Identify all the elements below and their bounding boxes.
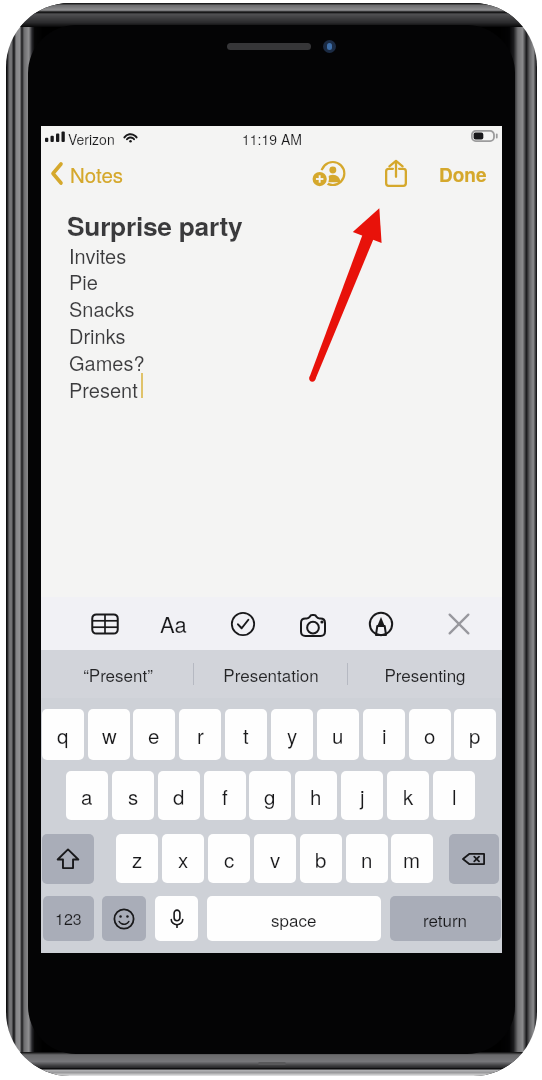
- staticText: w: [102, 720, 117, 749]
- button[interactable]: q: [42, 709, 84, 760]
- staticText: v: [270, 844, 281, 873]
- staticText: f: [222, 781, 228, 810]
- button[interactable]: h: [295, 771, 337, 820]
- button[interactable]: Notes: [41, 158, 134, 199]
- staticText: Aa: [160, 608, 187, 640]
- staticText: Surprise party: [67, 206, 243, 244]
- staticText: z: [132, 844, 143, 873]
- staticText: s: [128, 781, 139, 810]
- staticText: e: [148, 720, 160, 749]
- staticText: t: [243, 720, 249, 749]
- staticText: Presentation: [223, 662, 319, 686]
- button[interactable]: “Present”: [41, 650, 194, 698]
- staticText: o: [424, 720, 436, 749]
- staticText: Present: [69, 375, 138, 404]
- staticText: return: [423, 907, 468, 931]
- staticText: Presenting: [384, 662, 466, 686]
- button[interactable]: z: [116, 834, 158, 883]
- staticText: “Present”: [83, 662, 153, 686]
- staticText: l: [452, 781, 457, 810]
- button[interactable]: Aa: [150, 603, 196, 644]
- button[interactable]: m: [391, 834, 433, 883]
- button[interactable]: Share: [376, 159, 416, 198]
- staticText: u: [332, 720, 344, 749]
- staticText: 11:19 AM: [242, 129, 302, 149]
- staticText: Verizon: [68, 129, 115, 149]
- button[interactable]: Done: [433, 158, 502, 199]
- button[interactable]: b: [300, 834, 342, 883]
- button[interactable]: Insert table: [82, 603, 128, 644]
- staticText: Invites: [69, 241, 127, 270]
- button[interactable]: Markup: [358, 603, 404, 644]
- staticText: q: [57, 720, 69, 749]
- staticText: d: [173, 781, 185, 810]
- staticText: i: [382, 720, 387, 749]
- button[interactable]: return: [390, 896, 501, 941]
- button[interactable]: n: [346, 834, 388, 883]
- staticText: x: [178, 844, 189, 873]
- staticText: g: [264, 781, 276, 810]
- button[interactable]: s: [112, 771, 154, 820]
- staticText: h: [310, 781, 322, 810]
- button[interactable]: y: [271, 709, 313, 760]
- button[interactable]: space: [207, 896, 381, 941]
- button[interactable]: Camera: [290, 603, 336, 644]
- staticText: k: [403, 781, 414, 810]
- button[interactable]: j: [341, 771, 383, 820]
- button[interactable]: v: [254, 834, 296, 883]
- staticText: Games?: [69, 348, 145, 377]
- button[interactable]: c: [208, 834, 250, 883]
- button[interactable]: Checklist: [220, 603, 266, 644]
- button[interactable]: f: [204, 771, 246, 820]
- button[interactable]: o: [409, 709, 451, 760]
- staticText: c: [224, 844, 235, 873]
- staticText: y: [287, 720, 298, 749]
- button[interactable]: Presentation: [194, 650, 348, 698]
- button[interactable]: Dictate: [155, 896, 198, 941]
- button[interactable]: x: [162, 834, 204, 883]
- button[interactable]: u: [317, 709, 359, 760]
- button[interactable]: l: [433, 771, 475, 820]
- button[interactable]: 123: [43, 896, 94, 941]
- staticText: m: [403, 844, 421, 873]
- button[interactable]: Close keyboard: [436, 603, 482, 644]
- staticText: Pie: [69, 267, 98, 296]
- button[interactable]: i: [363, 709, 405, 760]
- staticText: Done: [439, 161, 487, 188]
- button[interactable]: d: [158, 771, 200, 820]
- staticText: Notes: [70, 159, 124, 188]
- button[interactable]: Shift: [42, 834, 94, 884]
- staticText: Snacks: [69, 294, 135, 323]
- button[interactable]: p: [454, 709, 496, 760]
- staticText: n: [361, 844, 373, 873]
- button[interactable]: w: [88, 709, 130, 760]
- staticText: p: [469, 720, 481, 749]
- staticText: j: [360, 781, 365, 810]
- button[interactable]: r: [179, 709, 221, 760]
- button[interactable]: Emoji: [102, 896, 146, 941]
- button[interactable]: k: [387, 771, 429, 820]
- button[interactable]: g: [249, 771, 291, 820]
- button[interactable]: Presenting: [348, 650, 502, 698]
- button[interactable]: Add people: [305, 157, 352, 200]
- staticText: 123: [55, 907, 82, 930]
- staticText: b: [315, 844, 327, 873]
- staticText: r: [197, 720, 204, 749]
- staticText: space: [271, 907, 317, 931]
- button[interactable]: e: [133, 709, 175, 760]
- staticText: Drinks: [69, 321, 126, 350]
- button[interactable]: a: [66, 771, 108, 820]
- button[interactable]: Backspace: [449, 834, 499, 884]
- button[interactable]: t: [225, 709, 267, 760]
- staticText: a: [81, 781, 93, 810]
